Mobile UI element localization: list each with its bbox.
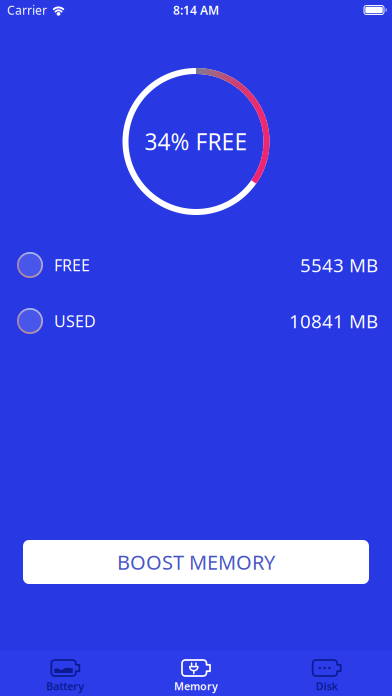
staticText: Memory (174, 679, 218, 693)
staticText: FREE (54, 254, 90, 276)
staticText: BOOST MEMORY (117, 549, 275, 575)
button[interactable]: Disk (261, 650, 392, 696)
staticText: 5543 MB (300, 253, 378, 277)
staticText: 10841 MB (289, 309, 378, 333)
staticText: Battery (46, 679, 84, 693)
staticText: Carrier (7, 2, 47, 18)
staticText: USED (54, 310, 96, 332)
button[interactable]: Memory (131, 650, 261, 696)
button[interactable]: USED (0, 293, 392, 349)
button[interactable]: FREE (0, 237, 392, 293)
button[interactable]: Battery (0, 650, 131, 696)
staticText: 34% FREE (144, 126, 247, 156)
staticText: 8:14 AM (173, 2, 219, 18)
button[interactable]: BOOST MEMORY (23, 540, 369, 584)
staticText: Disk (316, 679, 338, 693)
